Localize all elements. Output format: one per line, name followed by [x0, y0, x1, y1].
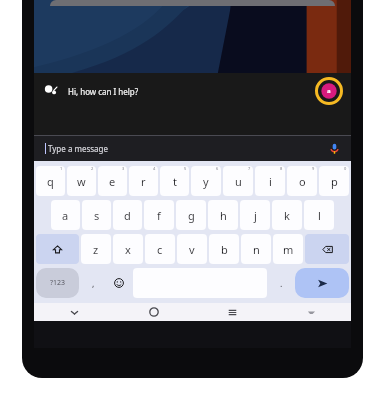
- button[interactable]: s: [82, 200, 111, 230]
- button[interactable]: Backspace: [305, 234, 349, 264]
- staticText: 1: [60, 166, 63, 171]
- button[interactable]: p: [319, 166, 349, 196]
- button[interactable]: t: [160, 166, 189, 196]
- button[interactable]: j: [240, 200, 270, 230]
- button[interactable]: a: [51, 200, 80, 230]
- button[interactable]: e: [98, 166, 127, 196]
- button[interactable]: r: [129, 166, 158, 196]
- staticText: w: [77, 174, 86, 189]
- button[interactable]: d: [113, 200, 142, 230]
- staticText: n: [253, 242, 260, 257]
- button[interactable]: z: [81, 234, 111, 264]
- staticText: x: [125, 242, 131, 257]
- staticText: v: [189, 242, 195, 257]
- staticText: a: [62, 208, 69, 223]
- staticText: .: [280, 277, 283, 289]
- button[interactable]: ,: [81, 268, 105, 298]
- staticText: s: [94, 208, 100, 223]
- button[interactable]: Home: [114, 303, 193, 321]
- button[interactable]: o: [287, 166, 317, 196]
- staticText: 6: [216, 166, 219, 171]
- button[interactable]: ?123: [36, 268, 79, 298]
- button[interactable]: v: [177, 234, 207, 264]
- staticText: o: [299, 174, 306, 189]
- button[interactable]: w: [67, 166, 96, 196]
- staticText: p: [331, 174, 338, 189]
- button[interactable]: u: [223, 166, 253, 196]
- button[interactable]: Send: [295, 268, 349, 298]
- staticText: m: [283, 242, 294, 257]
- button[interactable]: k: [272, 200, 302, 230]
- staticText: q: [47, 174, 54, 189]
- staticText: g: [188, 208, 195, 223]
- staticText: 9: [312, 166, 315, 171]
- staticText: d: [124, 208, 131, 223]
- button[interactable]: Recents: [193, 303, 272, 321]
- staticText: c: [157, 242, 163, 257]
- staticText: k: [284, 208, 290, 223]
- button[interactable]: f: [144, 200, 174, 230]
- staticText: y: [203, 174, 209, 189]
- staticText: i: [269, 174, 272, 189]
- button[interactable]: q: [36, 166, 65, 196]
- staticText: t: [173, 174, 177, 189]
- button[interactable]: .: [269, 268, 293, 298]
- staticText: j: [254, 208, 257, 223]
- staticText: 3: [122, 166, 125, 171]
- staticText: ,: [92, 277, 95, 289]
- button[interactable]: Switch keyboard: [272, 303, 351, 321]
- staticText: f: [157, 208, 161, 223]
- button[interactable]: Assistant avatar: [315, 77, 343, 105]
- staticText: z: [93, 242, 99, 257]
- button[interactable]: Emoji: [107, 268, 131, 298]
- staticText: e: [109, 174, 116, 189]
- staticText: 7: [248, 166, 251, 171]
- button[interactable]: Type a message: [34, 135, 351, 161]
- button[interactable]: Back: [34, 303, 114, 321]
- button[interactable]: g: [176, 200, 206, 230]
- staticText: l: [318, 208, 321, 223]
- staticText: 2: [91, 166, 94, 171]
- staticText: b: [221, 242, 228, 257]
- staticText: 0: [344, 166, 347, 171]
- button[interactable]: y: [191, 166, 221, 196]
- staticText: Hi, how can I help?: [68, 86, 139, 97]
- button[interactable]: Assistant: [34, 73, 351, 109]
- staticText: 8: [280, 166, 283, 171]
- staticText: 5: [184, 166, 187, 171]
- button[interactable]: n: [241, 234, 271, 264]
- button[interactable]: h: [208, 200, 238, 230]
- button[interactable]: Shift: [36, 234, 79, 264]
- button[interactable]: Voice input: [328, 142, 341, 155]
- staticText: r: [141, 174, 146, 189]
- button[interactable]: b: [209, 234, 239, 264]
- other: Assistant: [44, 84, 58, 98]
- button[interactable]: c: [145, 234, 175, 264]
- staticText: u: [235, 174, 242, 189]
- staticText: 4: [153, 166, 156, 171]
- staticText: Type a message: [48, 143, 109, 154]
- button[interactable]: x: [113, 234, 143, 264]
- button[interactable]: m: [273, 234, 303, 264]
- staticText: ?123: [50, 278, 66, 288]
- button[interactable]: i: [255, 166, 285, 196]
- staticText: a: [327, 87, 331, 95]
- staticText: h: [220, 208, 227, 223]
- button[interactable]: l: [304, 200, 334, 230]
